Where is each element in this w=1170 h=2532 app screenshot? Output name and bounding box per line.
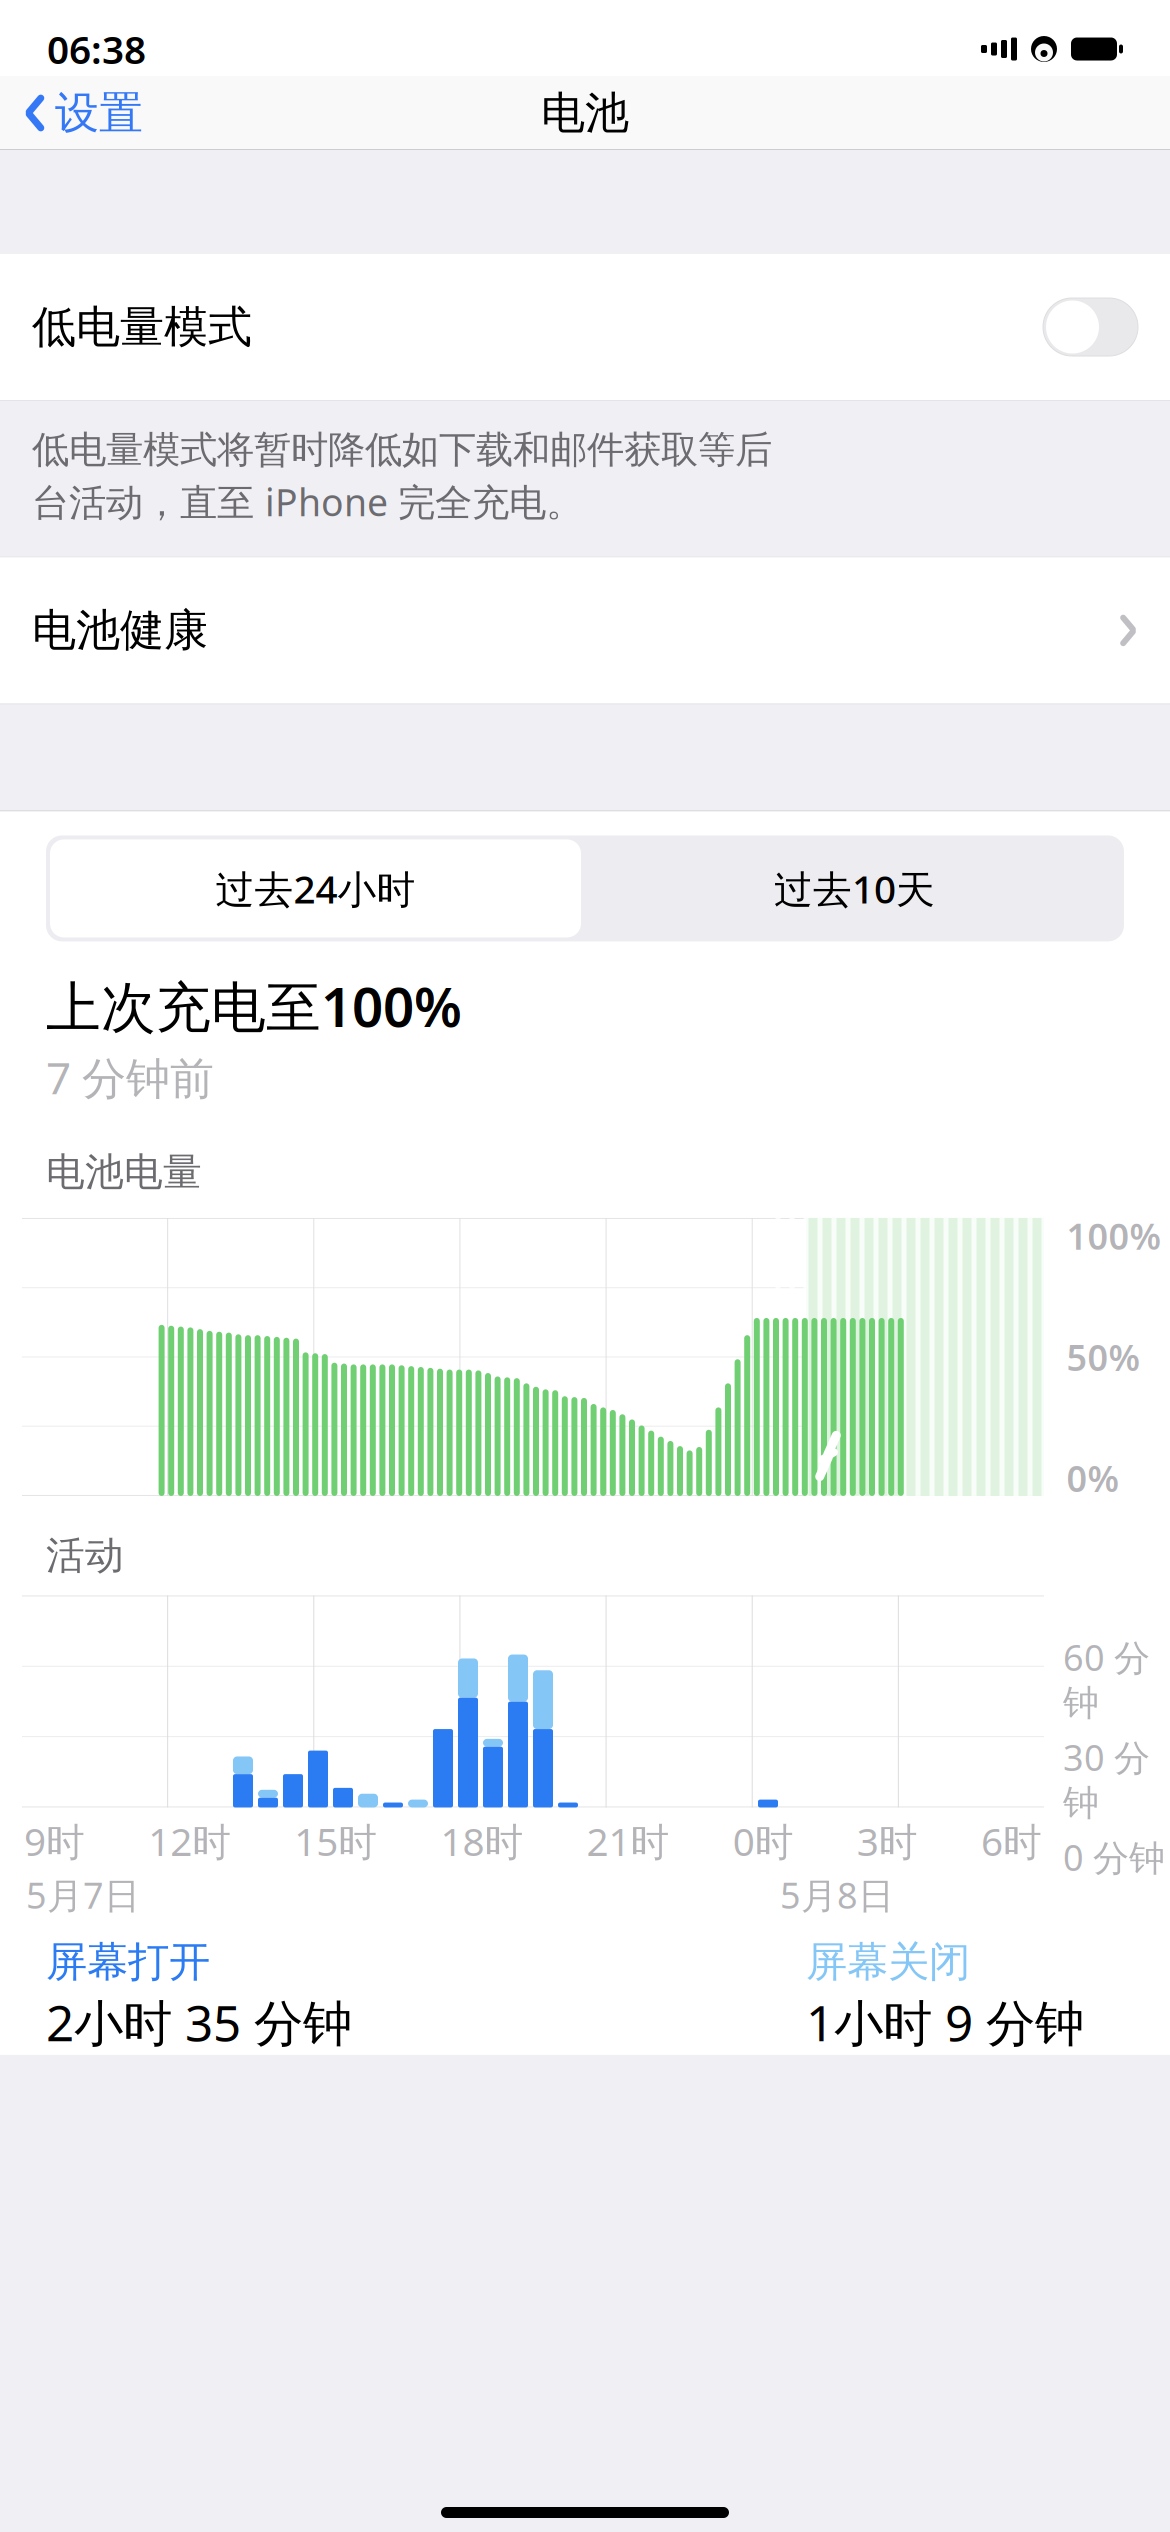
staticText: 过去24小时	[215, 863, 415, 914]
staticText: 台活动，直至 iPhone 完全充电。	[32, 477, 583, 526]
staticText: 电池电量	[46, 1148, 202, 1196]
staticText: 5月8日	[780, 1871, 894, 1919]
staticText: 18时	[440, 1815, 523, 1867]
staticText: 7 分钟前	[46, 1048, 214, 1106]
staticText: 3时	[857, 1815, 918, 1867]
button[interactable]: 设置	[0, 76, 143, 150]
staticText: 0 分钟	[1063, 1833, 1165, 1881]
staticText: 低电量模式将暂时降低如下载和邮件获取等后	[32, 427, 772, 473]
staticText: 电池健康	[32, 603, 208, 657]
staticText: 06:38	[47, 23, 146, 75]
staticText: 21时	[587, 1815, 670, 1867]
button[interactable]: 过去10天	[585, 839, 1124, 937]
button[interactable]: 低电量模式	[0, 254, 1170, 400]
staticText: 1小时 9 分钟	[806, 1989, 1084, 2055]
staticText: 0时	[733, 1815, 794, 1867]
button[interactable]: 过去24小时	[46, 835, 585, 941]
staticText: 9时	[24, 1815, 85, 1867]
staticText: 过去10天	[774, 863, 935, 914]
staticText: 30 分钟	[1063, 1733, 1150, 1825]
staticText: 0%	[1066, 1454, 1119, 1502]
staticText: 15时	[294, 1815, 377, 1867]
staticText: 屏幕打开	[46, 1937, 210, 1987]
staticText: 上次充电至100%	[46, 969, 462, 1042]
button[interactable]: 电池健康	[0, 557, 1170, 703]
staticText: 5月7日	[26, 1871, 140, 1919]
staticText: 100%	[1066, 1212, 1161, 1260]
staticText: 50%	[1066, 1333, 1140, 1381]
staticText: 60 分钟	[1063, 1633, 1150, 1725]
staticText: 6时	[981, 1815, 1042, 1867]
staticText: 设置	[55, 86, 143, 140]
staticText: 电池	[541, 86, 629, 140]
staticText: 低电量模式	[32, 300, 252, 354]
staticText: 屏幕关闭	[806, 1937, 970, 1987]
staticText: 2小时 35 分钟	[46, 1989, 352, 2055]
staticText: 12时	[148, 1815, 231, 1867]
staticText: 活动	[46, 1532, 124, 1579]
